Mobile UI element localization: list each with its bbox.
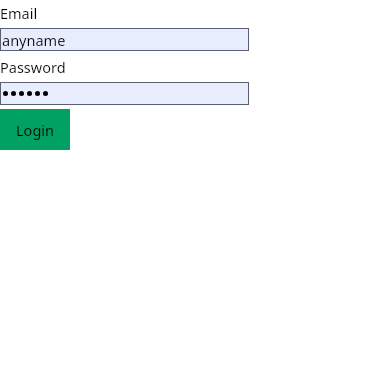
button[interactable] [0,82,249,105]
staticText: Login [16,120,54,140]
staticText: anyname [2,30,66,50]
staticText: Password [0,57,66,77]
button[interactable]: anyname [0,28,249,51]
button[interactable]: Login [0,109,70,150]
staticText: Email [0,3,38,23]
